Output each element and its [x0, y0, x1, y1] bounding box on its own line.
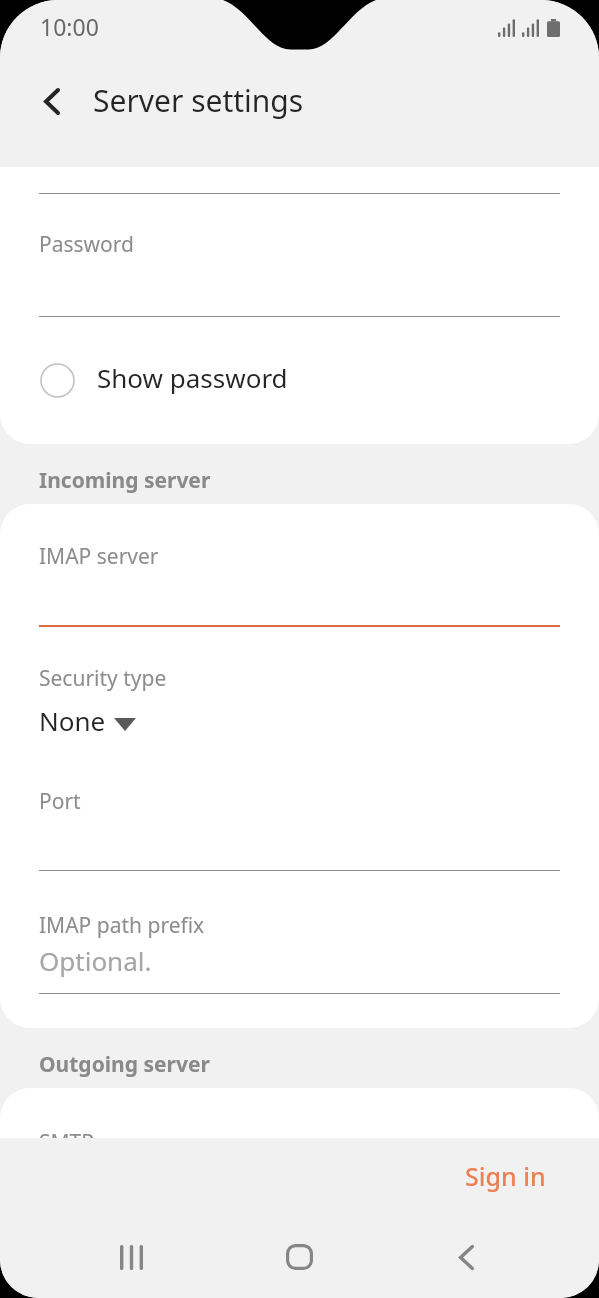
button[interactable]: Port — [0, 760, 599, 875]
staticText: IMAP server — [39, 542, 159, 571]
button[interactable]: Home — [239, 1227, 359, 1287]
button[interactable]: Password — [0, 200, 599, 318]
button[interactable]: Back — [406, 1227, 526, 1287]
button[interactable]: IMAP server — [0, 520, 599, 630]
staticText: Port — [39, 787, 81, 816]
staticText: Sign in — [465, 1159, 546, 1193]
button[interactable]: Navigate up — [26, 75, 78, 127]
button[interactable]: Show password — [0, 349, 599, 411]
staticText: Incoming server — [39, 466, 211, 495]
button[interactable]: Sign in — [441, 1149, 569, 1203]
staticText: Password — [39, 230, 134, 259]
staticText: IMAP path prefix — [39, 911, 205, 940]
button[interactable]: Recent apps — [71, 1227, 191, 1287]
button[interactable]: Security type — [0, 650, 599, 745]
staticText: None — [39, 703, 106, 738]
staticText: Show password — [97, 360, 288, 395]
staticText: Server settings — [93, 80, 304, 121]
button[interactable]: IMAP path prefix — [0, 895, 599, 997]
staticText: Outgoing server — [39, 1050, 210, 1079]
other: Signal and battery status — [498, 19, 560, 37]
staticText: 10:00 — [40, 11, 99, 42]
staticText: Security type — [39, 664, 167, 693]
staticText: SMTP server — [39, 1128, 162, 1157]
staticText: Optional. — [39, 943, 152, 978]
